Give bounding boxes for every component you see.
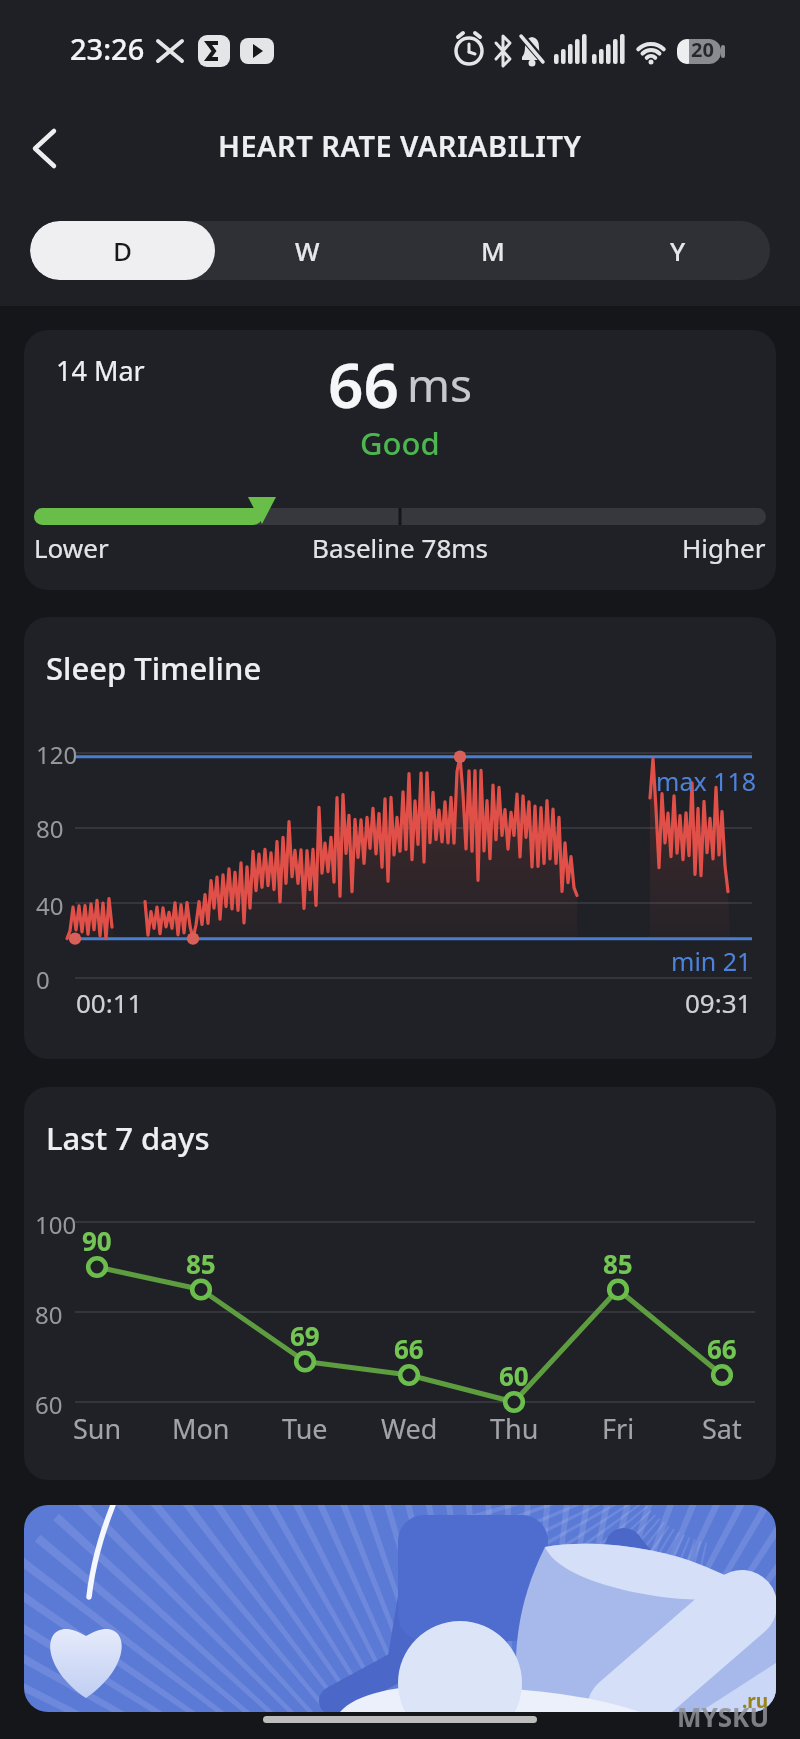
staticText: 0 (36, 963, 50, 996)
staticText: 09:31 (685, 985, 752, 1020)
staticText: 80 (36, 812, 64, 845)
staticText: Wed (381, 1410, 438, 1447)
staticText: Thu (490, 1410, 539, 1447)
staticText: 23:26 (70, 29, 145, 68)
staticText: Mon (172, 1410, 230, 1447)
staticText: 85 (603, 1246, 633, 1281)
staticText: 66 (394, 1331, 424, 1366)
staticText: 60 (499, 1358, 529, 1393)
staticText: MYSKU (677, 1699, 770, 1734)
button[interactable]: M (400, 221, 585, 280)
button[interactable]: Last 7 days (24, 1087, 776, 1480)
staticText: 66 (707, 1331, 737, 1366)
staticText: 66 (328, 342, 399, 426)
button[interactable]: 14 Mar (24, 330, 776, 590)
staticText: Higher (682, 530, 766, 565)
button[interactable]: D (30, 221, 215, 280)
staticText: 90 (82, 1223, 112, 1258)
staticText: .ru (742, 1688, 769, 1714)
staticText: 60 (35, 1388, 63, 1421)
staticText: Lower (34, 530, 109, 565)
staticText: W (295, 233, 320, 268)
staticText: 00:11 (76, 985, 143, 1020)
staticText: D (113, 233, 133, 268)
staticText: ms (407, 353, 473, 416)
staticText: 85 (186, 1246, 216, 1281)
staticText: min 21 (671, 944, 752, 978)
staticText: Sat (702, 1410, 742, 1447)
staticText: 100 (35, 1208, 77, 1241)
staticText: Y (670, 233, 686, 268)
staticText: Sun (73, 1410, 122, 1447)
button[interactable] (16, 120, 72, 176)
staticText: HEART RATE VARIABILITY (218, 126, 582, 165)
staticText: Tue (282, 1410, 328, 1447)
staticText: Fri (602, 1410, 635, 1447)
staticText: max 118 (656, 764, 757, 798)
staticText: 14 Mar (56, 352, 145, 389)
button[interactable] (24, 1505, 776, 1712)
staticText: Baseline 78ms (312, 530, 489, 565)
button[interactable]: Y (585, 221, 770, 280)
button[interactable]: Sleep Timeline (24, 617, 776, 1059)
staticText: 80 (35, 1298, 63, 1331)
staticText: Sleep Timeline (46, 647, 262, 689)
staticText: 20 (691, 36, 714, 63)
staticText: 40 (36, 889, 64, 922)
staticText: Good (360, 422, 440, 464)
staticText: 69 (290, 1318, 320, 1353)
staticText: 120 (36, 738, 78, 771)
button[interactable]: W (215, 221, 400, 280)
staticText: Last 7 days (46, 1117, 210, 1159)
staticText: M (481, 233, 505, 268)
